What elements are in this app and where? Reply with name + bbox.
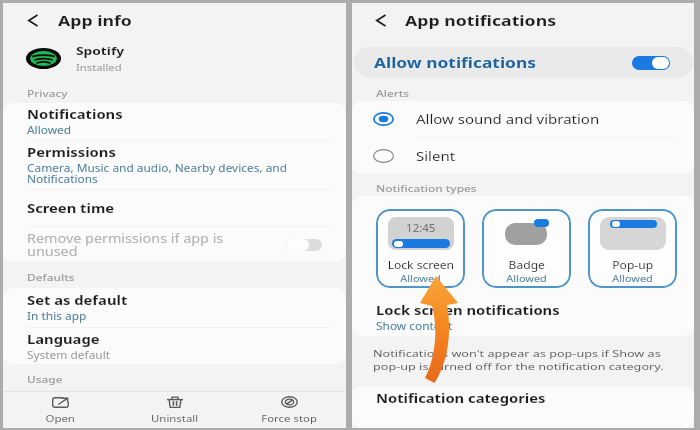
- button[interactable]: Uninstall: [118, 392, 232, 428]
- staticText: 12:45: [406, 221, 436, 235]
- staticText: System default: [27, 348, 110, 362]
- staticText: Uninstall: [151, 412, 199, 425]
- staticText: Alerts: [376, 87, 410, 100]
- button[interactable]: Language: [3, 328, 346, 364]
- staticText: Defaults: [27, 271, 76, 284]
- staticText: Installed: [76, 61, 122, 73]
- staticText: Set as default: [27, 292, 128, 309]
- button[interactable]: Back: [352, 3, 694, 37]
- button[interactable]: Permissions: [3, 141, 346, 189]
- staticText: Screen time: [27, 200, 114, 217]
- staticText: Spotify: [76, 43, 125, 58]
- button[interactable]: Open: [3, 392, 118, 428]
- staticText: App notifications: [405, 10, 557, 30]
- staticText: Notification categories: [376, 390, 546, 407]
- button[interactable]: Back: [370, 3, 392, 37]
- staticText: Allowed: [27, 123, 72, 137]
- staticText: Show content: [376, 319, 453, 333]
- button[interactable]: Remove permissions if app is unused: [3, 227, 346, 262]
- button[interactable]: Allow notifications: [354, 47, 693, 78]
- staticText: Badge: [509, 258, 545, 272]
- staticText: Pop-up: [612, 258, 654, 272]
- button[interactable]: Back: [22, 3, 44, 37]
- staticText: Notifications: [27, 106, 124, 123]
- staticText: Lock screen notifications: [376, 302, 560, 319]
- staticText: In this app: [27, 309, 86, 323]
- staticText: Allow notifications: [374, 53, 536, 72]
- staticText: App info: [58, 10, 132, 30]
- staticText: Allowed: [612, 272, 654, 285]
- button[interactable]: Pop-up: [588, 209, 677, 288]
- staticText: Language: [27, 331, 100, 348]
- staticText: Open: [45, 412, 75, 425]
- button[interactable]: Back: [3, 3, 346, 37]
- button[interactable]: Badge: [482, 209, 571, 288]
- staticText: Allowed: [506, 272, 548, 285]
- staticText: Notifications won't appear as pop-ups if…: [373, 347, 664, 373]
- button[interactable]: Allow sound and vibration: [352, 101, 694, 137]
- staticText: Privacy: [27, 87, 68, 100]
- button[interactable]: Set as default: [3, 288, 346, 327]
- button[interactable]: Force stop: [232, 392, 346, 428]
- button[interactable]: Notification categories: [352, 386, 694, 410]
- staticText: Usage: [27, 373, 63, 386]
- staticText: Camera, Music and audio, Nearby devices,…: [27, 161, 288, 186]
- staticText: Force stop: [261, 412, 318, 425]
- button[interactable]: Allow notifications toggle: [632, 56, 670, 70]
- button[interactable]: Notifications: [3, 103, 346, 140]
- staticText: Lock screen: [388, 258, 454, 272]
- button[interactable]: 12:45: [376, 209, 465, 288]
- button[interactable]: Screen time: [3, 190, 346, 226]
- staticText: Permissions: [27, 144, 117, 161]
- staticText: Silent: [416, 148, 456, 165]
- button[interactable]: Remove permissions toggle: [286, 239, 322, 251]
- button[interactable]: Silent: [352, 138, 694, 174]
- staticText: Notification types: [376, 182, 477, 195]
- staticText: Remove permissions if app is unused: [27, 230, 224, 260]
- staticText: Allowed: [400, 272, 442, 285]
- button[interactable]: Spotify: [3, 42, 346, 74]
- button[interactable]: Lock screen notifications: [352, 298, 694, 336]
- staticText: Allow sound and vibration: [416, 111, 600, 128]
